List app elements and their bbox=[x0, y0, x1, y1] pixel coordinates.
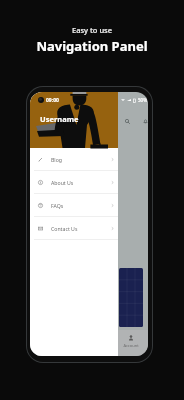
staticText: Username bbox=[40, 114, 79, 124]
button[interactable] bbox=[119, 268, 143, 327]
staticText: FAQs bbox=[51, 202, 64, 209]
staticText: Contact Us bbox=[51, 225, 78, 232]
staticText: 50% bbox=[138, 97, 147, 103]
button[interactable]: Blog bbox=[30, 148, 118, 170]
button[interactable]: Account bbox=[118, 330, 144, 356]
button[interactable]: Contact Us bbox=[30, 217, 118, 239]
staticText: Navigation Panel bbox=[0, 37, 184, 55]
staticText: Easy to use bbox=[0, 25, 184, 35]
staticText: Blog bbox=[51, 156, 63, 163]
staticText: 09:00 bbox=[46, 97, 59, 104]
button[interactable]: Search bbox=[122, 116, 133, 127]
button[interactable]: Notifications bbox=[140, 116, 148, 127]
button[interactable]: About Us bbox=[30, 171, 118, 193]
staticText: Account bbox=[118, 343, 144, 348]
staticText: About Us bbox=[51, 179, 74, 186]
button[interactable]: FAQs bbox=[30, 194, 118, 216]
